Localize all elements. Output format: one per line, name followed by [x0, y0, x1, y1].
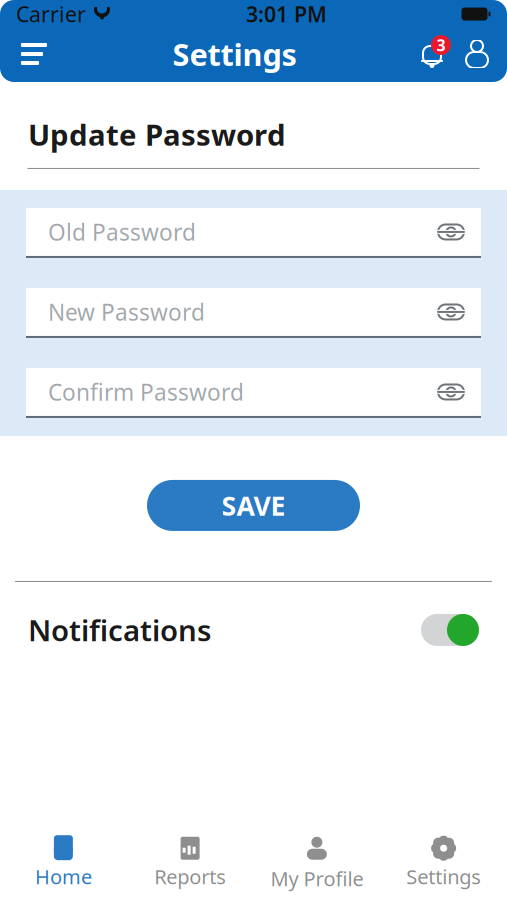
staticText: My Profile: [270, 865, 363, 892]
button[interactable]: Profile: [455, 30, 499, 78]
button[interactable]: Notifications toggle: [421, 608, 479, 652]
staticText: Confirm Password: [48, 377, 244, 407]
button[interactable]: Settings: [380, 832, 507, 894]
staticText: Old Password: [48, 217, 196, 247]
staticText: Settings: [172, 34, 296, 74]
staticText: 3: [436, 34, 445, 56]
button[interactable]: SAVE: [147, 480, 360, 531]
staticText: Settings: [406, 863, 481, 890]
button[interactable]: Reports: [127, 832, 254, 894]
button[interactable]: Menu: [8, 30, 60, 78]
button[interactable]: Notifications: [409, 30, 455, 78]
staticText: Update Password: [28, 115, 286, 154]
button[interactable]: Show New Password: [431, 290, 471, 334]
staticText: New Password: [48, 297, 205, 327]
button[interactable]: Home: [0, 832, 127, 894]
button[interactable]: Show Old Password: [431, 210, 471, 254]
button[interactable]: Show Confirm Password: [431, 370, 471, 414]
staticText: SAVE: [221, 488, 285, 523]
staticText: 3:01 PM: [246, 0, 327, 28]
staticText: Reports: [154, 863, 226, 890]
staticText: Notifications: [28, 610, 211, 649]
staticText: Home: [35, 863, 92, 890]
staticText: Carrier: [16, 0, 86, 28]
button[interactable]: My Profile: [253, 832, 380, 894]
